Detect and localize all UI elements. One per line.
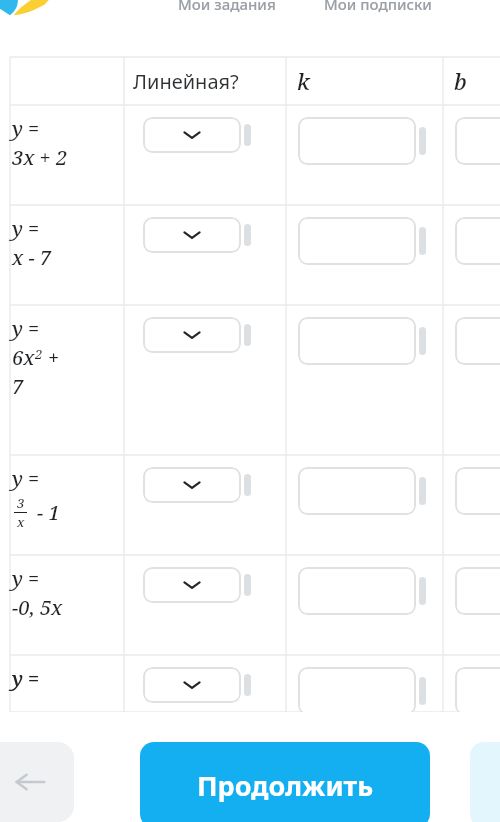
- button[interactable]: Выбрать вариант: [143, 667, 241, 703]
- staticText: x − 7: [12, 244, 52, 271]
- staticText: y =: [12, 665, 40, 692]
- staticText: Продолжить: [197, 767, 374, 804]
- button[interactable]: Поле ввода: [455, 117, 500, 165]
- staticText: 3x + 2: [12, 144, 68, 171]
- staticText: −0, 5x: [12, 594, 63, 621]
- staticText: − 1: [37, 499, 60, 526]
- button[interactable]: Поле ввода: [298, 217, 416, 265]
- staticText: k: [297, 66, 310, 96]
- button[interactable]: Мои задания: [174, 0, 280, 16]
- button[interactable]: Поле ввода: [298, 317, 416, 365]
- staticText: x: [17, 513, 25, 531]
- button[interactable]: Поле ввода: [455, 667, 500, 715]
- staticText: y =: [12, 315, 40, 342]
- button[interactable]: Продолжить: [140, 742, 430, 822]
- button[interactable]: Поле ввода: [455, 217, 500, 265]
- staticText: y =: [12, 465, 40, 492]
- staticText: 3: [17, 494, 25, 512]
- staticText: 6x: [12, 344, 35, 371]
- button[interactable]: Выбрать вариант: [143, 217, 241, 253]
- button[interactable]: Выбрать вариант: [143, 567, 241, 603]
- button[interactable]: Поле ввода: [298, 667, 416, 715]
- staticText: 2: [35, 345, 43, 363]
- button[interactable]: Поле ввода: [298, 117, 416, 165]
- staticText: y =: [12, 215, 40, 242]
- staticText: y =: [12, 665, 40, 692]
- staticText: b: [454, 66, 467, 96]
- button[interactable]: Поле ввода: [455, 467, 500, 515]
- button[interactable]: Выбрать вариант: [143, 117, 241, 153]
- staticText: Линейная?: [133, 68, 239, 95]
- button[interactable]: Поле ввода: [298, 467, 416, 515]
- staticText: y =: [12, 115, 40, 142]
- staticText: y =: [12, 565, 40, 592]
- staticText: 7: [12, 373, 24, 400]
- button[interactable]: Поле ввода: [298, 567, 416, 615]
- button[interactable]: Поле ввода: [455, 567, 500, 615]
- staticText: Мои задания: [178, 0, 276, 14]
- staticText: Мои подписки: [324, 0, 432, 14]
- button[interactable]: Выбрать вариант: [143, 467, 241, 503]
- staticText: +: [48, 344, 60, 371]
- button[interactable]: Назад: [0, 742, 74, 822]
- button[interactable]: Выбрать вариант: [143, 317, 241, 353]
- button[interactable]: Мои подписки: [320, 0, 436, 16]
- button[interactable]: Поле ввода: [455, 317, 500, 365]
